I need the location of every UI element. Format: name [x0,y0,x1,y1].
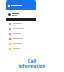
button[interactable] [6,46,36,51]
button[interactable] [6,36,36,41]
button[interactable]: Back [7,4,10,7]
button[interactable] [6,41,36,46]
button[interactable] [6,21,36,26]
staticText: Call information [0,58,64,69]
button[interactable] [6,31,36,36]
button[interactable] [6,26,36,31]
